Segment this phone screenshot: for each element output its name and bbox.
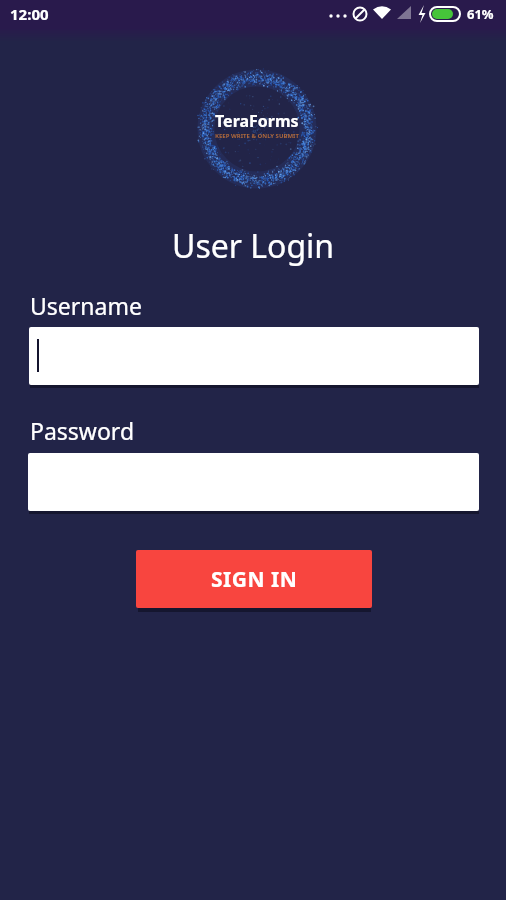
staticText: Username xyxy=(30,290,142,321)
staticText: 61% xyxy=(467,5,494,23)
staticText: SIGN IN xyxy=(211,565,298,594)
staticText: KEEP WRITE & ONLY SUBMIT xyxy=(215,132,299,140)
staticText: Password xyxy=(30,415,135,446)
staticText: 12:00 xyxy=(10,4,49,24)
button[interactable]: SIGN IN xyxy=(136,550,372,608)
staticText: User Login xyxy=(172,224,335,268)
button[interactable] xyxy=(29,327,479,385)
staticText: TeraForms xyxy=(215,110,299,132)
